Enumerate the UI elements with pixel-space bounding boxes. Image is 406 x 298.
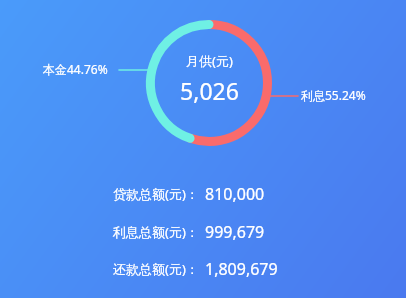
staticText: 月供(元)	[186, 52, 233, 70]
button[interactable]: 本金44.76%	[43, 61, 108, 77]
staticText: 还款总额(元)：	[113, 260, 199, 278]
button[interactable]: 贷款总额(元)：	[113, 183, 323, 205]
staticText: 810,000	[205, 183, 265, 205]
staticText: 5,026	[180, 75, 239, 106]
staticText: 1,809,679	[205, 258, 278, 280]
staticText: 利息总额(元)：	[113, 223, 199, 241]
staticText: 999,679	[205, 221, 265, 243]
other: Loan breakdown donut chart	[0, 0, 406, 298]
button[interactable]: 还款总额(元)：	[113, 258, 323, 280]
staticText: 贷款总额(元)：	[113, 185, 199, 203]
button[interactable]: 利息总额(元)：	[113, 221, 323, 243]
staticText: 利息55.24%	[301, 87, 366, 103]
button[interactable]: 利息55.24%	[301, 87, 366, 103]
button[interactable]: 月供(元)	[149, 52, 269, 106]
staticText: 本金44.76%	[43, 61, 108, 77]
